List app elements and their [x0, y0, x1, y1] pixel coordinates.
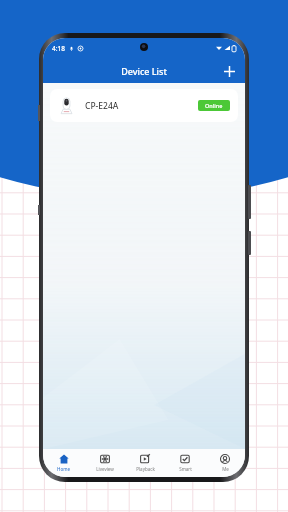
staticText: CP-E24A	[85, 100, 119, 112]
staticText: Playback	[136, 466, 155, 472]
button[interactable]: Playback	[125, 449, 165, 477]
button[interactable]: CP-E24A	[50, 89, 238, 122]
staticText: Me	[222, 466, 229, 472]
button[interactable]: Add device	[219, 61, 239, 81]
staticText: Smart	[179, 466, 192, 472]
button[interactable]: Liveview	[84, 449, 125, 477]
button[interactable]: Smart	[165, 449, 205, 477]
staticText: Home	[57, 466, 70, 472]
button[interactable]: Me	[205, 449, 245, 477]
staticText: 4:18	[52, 44, 65, 53]
staticText: Device List	[121, 65, 167, 77]
staticText: Online	[205, 102, 223, 109]
button[interactable]: Home	[43, 449, 84, 477]
button[interactable]: Online	[198, 100, 230, 111]
staticText: Liveview	[96, 466, 114, 472]
